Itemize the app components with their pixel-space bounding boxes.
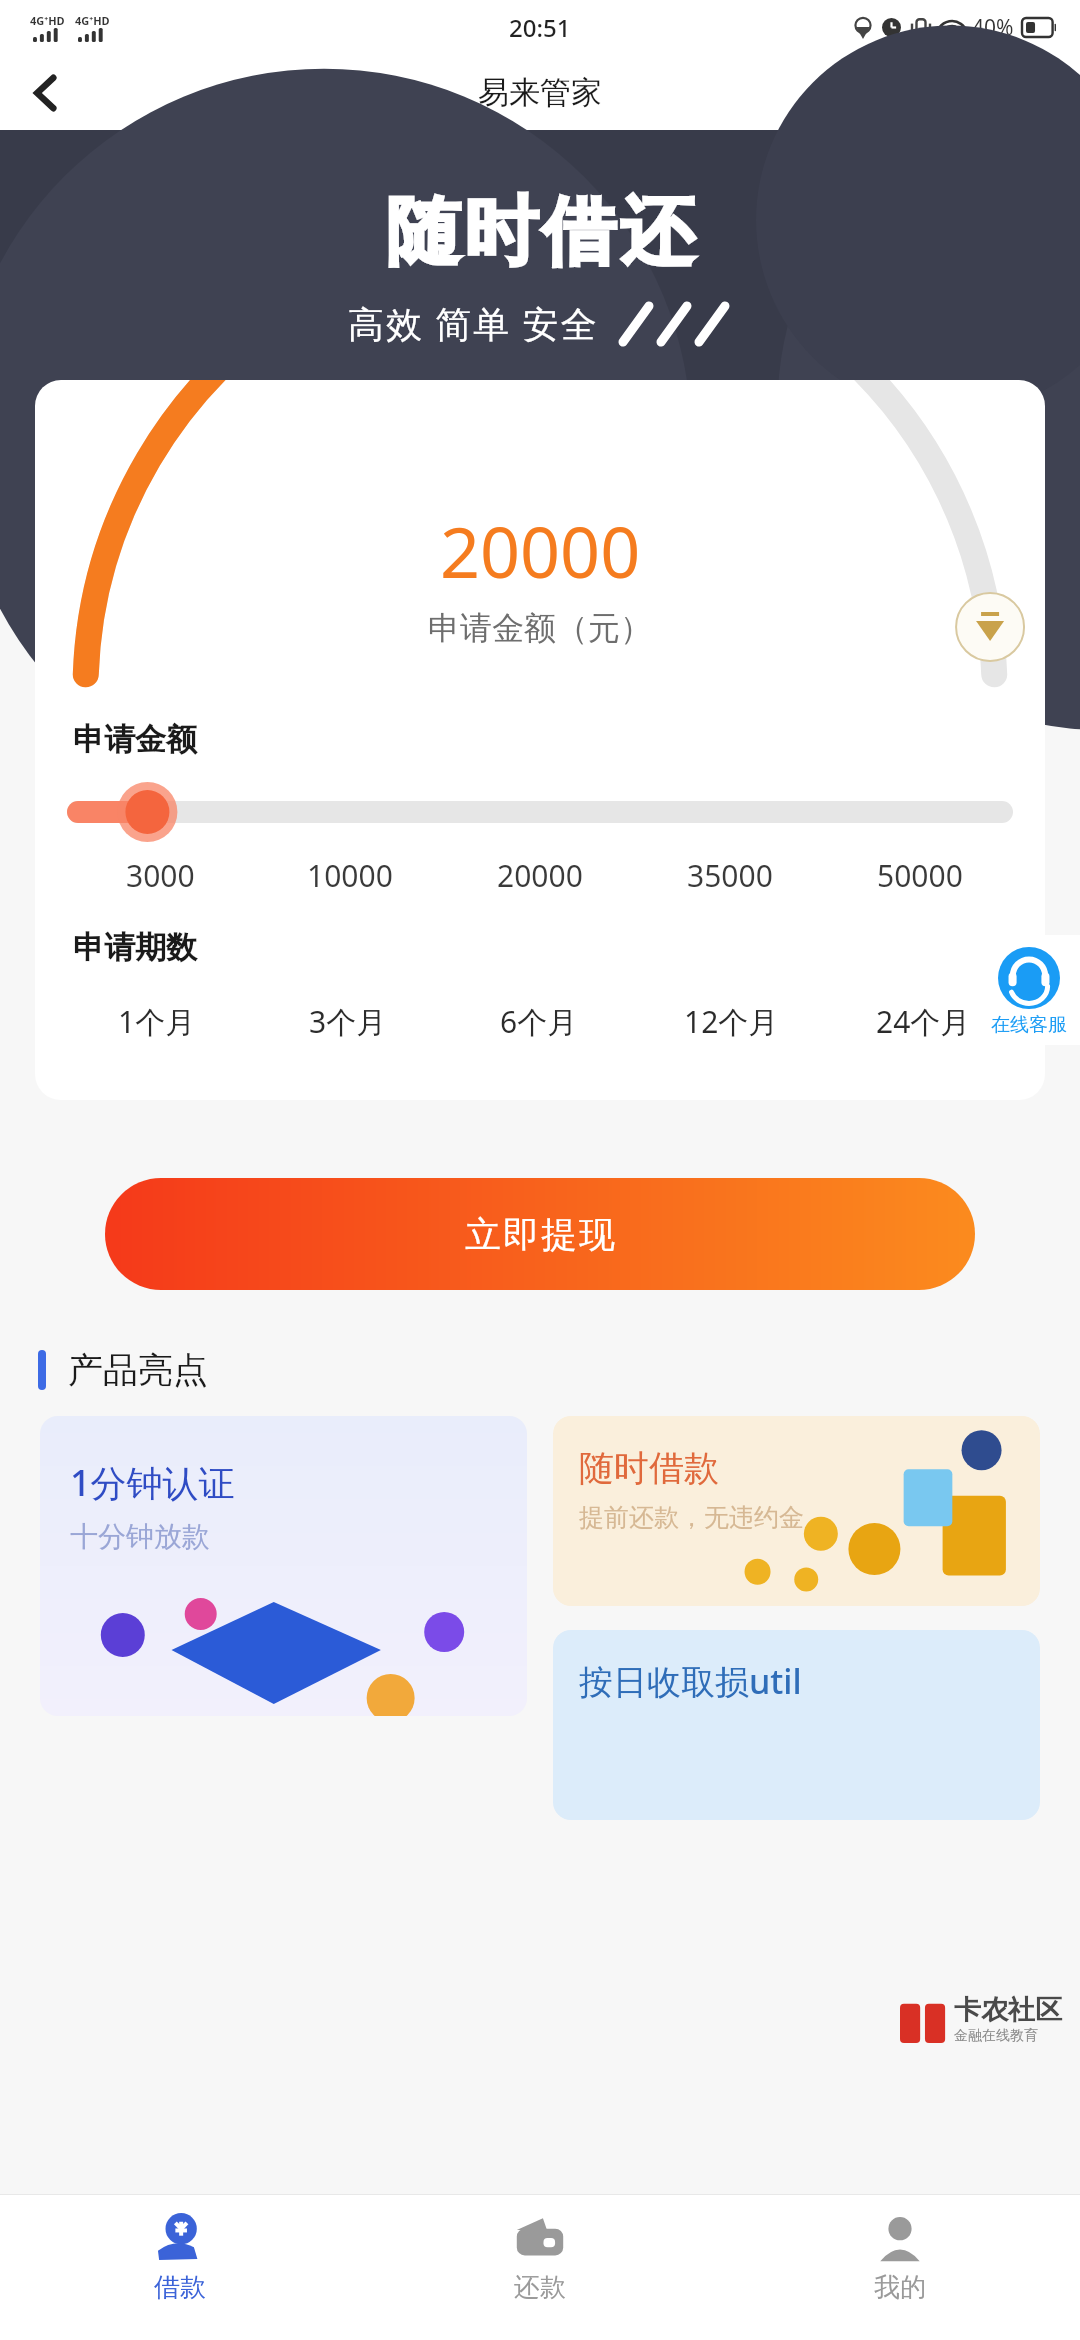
staticText: 随时借还 (384, 186, 696, 279)
button[interactable]: 24个月 (827, 1001, 1019, 1042)
staticText: 12个月 (684, 1001, 779, 1042)
staticText: 申请期数 (73, 928, 197, 967)
staticText: 提前还款，无违约金 (579, 1502, 804, 1533)
staticText: 1个月 (118, 1001, 196, 1042)
staticText: 20:51 (509, 11, 571, 44)
button[interactable]: 借款 (0, 2195, 360, 2340)
staticText: 易来管家 (478, 73, 602, 112)
button[interactable]: 6个月 (443, 1001, 635, 1042)
staticText: 4G⁺HD (75, 13, 110, 28)
staticText: 10000 (307, 855, 393, 896)
button[interactable]: 12个月 (635, 1001, 827, 1042)
staticText: 申请金额 (73, 720, 197, 759)
staticText: 申请金额（元） (428, 608, 652, 648)
staticText: 高效 简单 安全 (348, 299, 599, 348)
staticText: 我的 (874, 2271, 926, 2304)
staticText: 20000 (440, 503, 641, 598)
staticText: 35000 (687, 855, 773, 896)
button[interactable]: 我的 (720, 2195, 1080, 2340)
staticText: 十分钟放款 (70, 1519, 210, 1554)
staticText: 随时借款 (579, 1446, 719, 1490)
staticText: 40% (972, 13, 1014, 42)
staticText: 金融在线教育 (954, 2027, 1038, 2045)
staticText: 3个月 (309, 1001, 387, 1042)
staticText: 1分钟认证 (70, 1458, 235, 1507)
staticText: 按日收取损util (579, 1658, 802, 1704)
button[interactable]: 3个月 (252, 1001, 443, 1042)
staticText: 24个月 (876, 1001, 971, 1042)
staticText: 还款 (514, 2271, 566, 2304)
staticText: 20000 (497, 855, 583, 896)
button[interactable]: 随时借款 (553, 1416, 1040, 1606)
button[interactable]: Back (14, 62, 76, 124)
staticText: 50000 (877, 855, 963, 896)
staticText: 产品亮点 (68, 1348, 208, 1392)
button[interactable]: 还款 (360, 2195, 720, 2340)
staticText: 立即提现 (464, 1212, 616, 1257)
staticText: 3000 (126, 855, 195, 896)
staticText: 4G⁺HD (30, 13, 65, 28)
button[interactable]: 在线客服 (978, 935, 1080, 1045)
staticText: 6个月 (500, 1001, 578, 1042)
button[interactable]: 立即提现 (105, 1178, 975, 1290)
button[interactable] (67, 787, 1013, 837)
button[interactable]: 1个月 (61, 1001, 252, 1042)
button[interactable]: 1分钟认证 (40, 1416, 527, 1716)
staticText: 在线客服 (991, 1013, 1067, 1037)
staticText: 借款 (154, 2271, 206, 2304)
staticText: 卡农社区 (954, 1993, 1062, 2027)
button[interactable]: 按日收取损util (553, 1630, 1040, 1820)
